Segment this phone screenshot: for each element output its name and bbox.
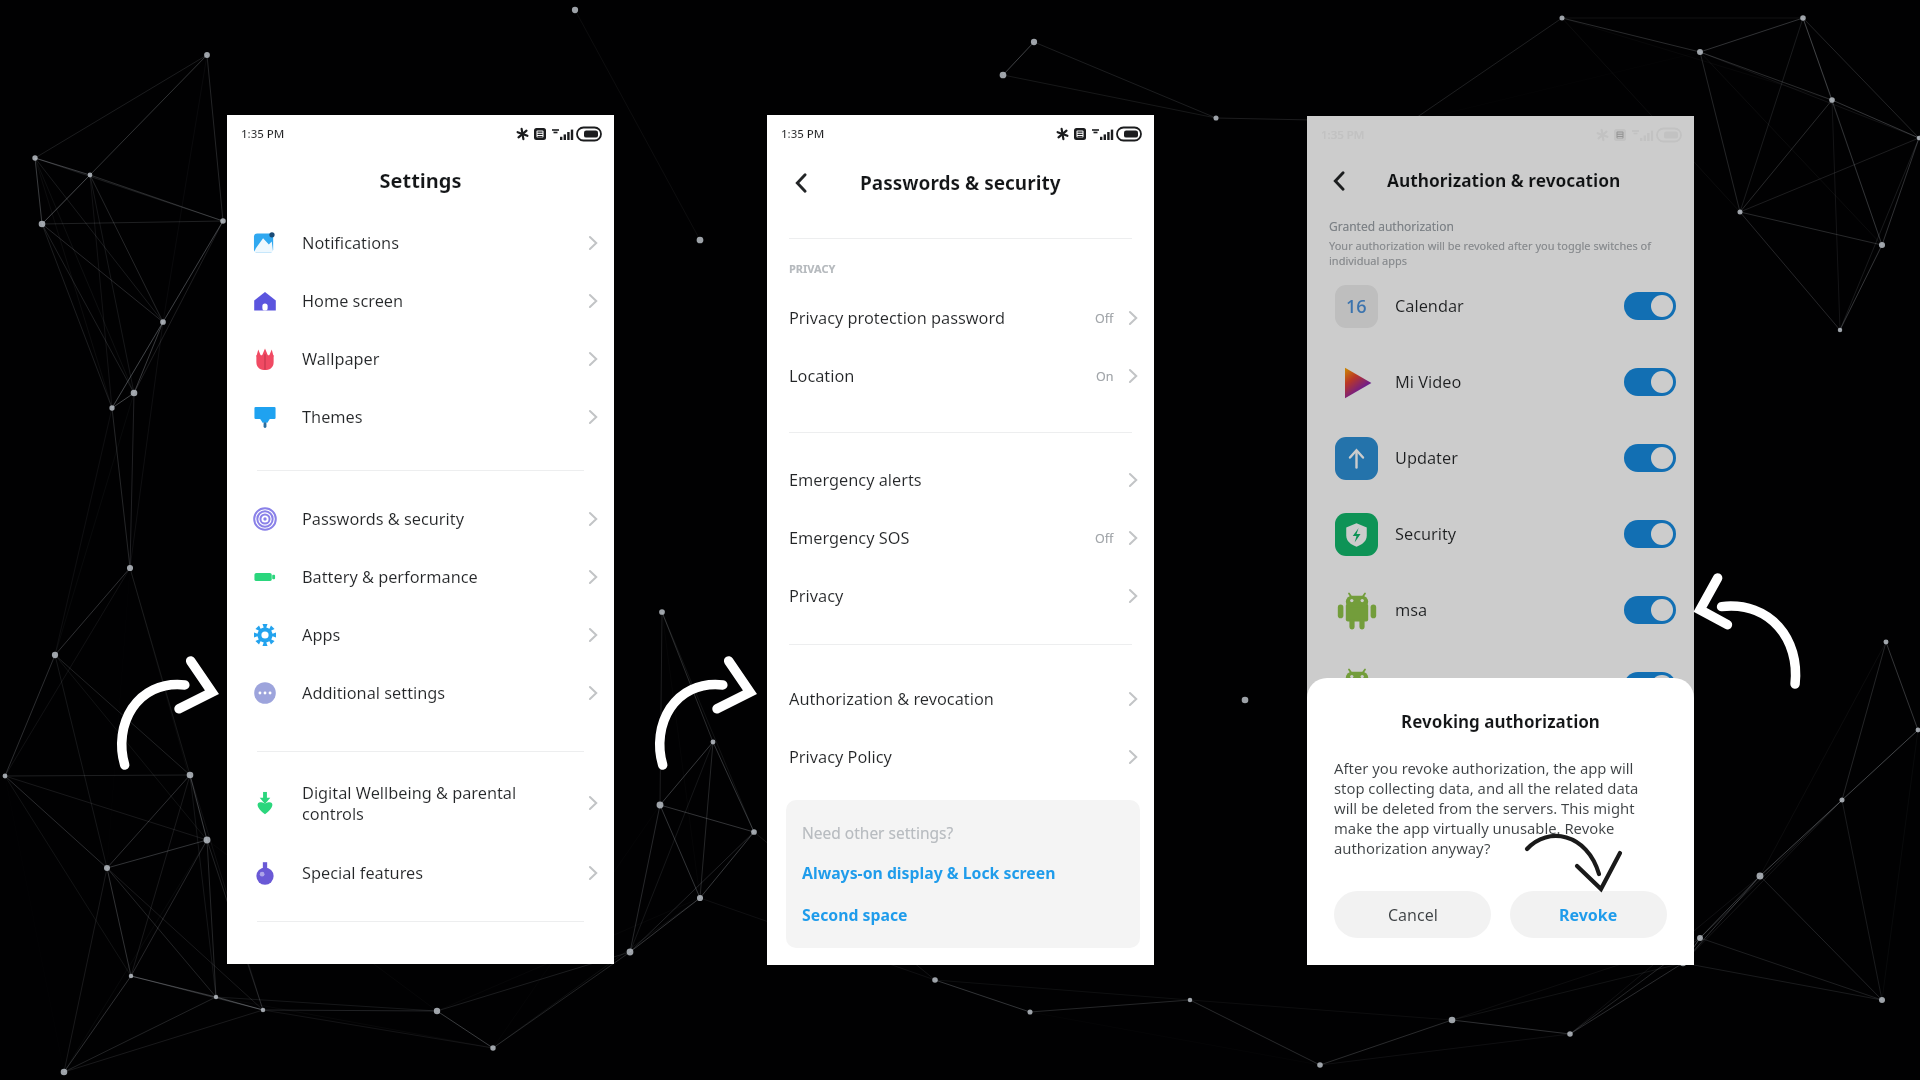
button[interactable]: Second space xyxy=(802,898,1140,932)
staticText: Digital Wellbeing & parental controls xyxy=(302,782,584,825)
staticText: Need other settings? xyxy=(802,822,954,843)
button[interactable]: 16 xyxy=(1307,268,1694,344)
staticText: Downloads xyxy=(1395,675,1624,697)
button[interactable]: Toggle authorization xyxy=(1624,292,1676,320)
staticText: Themes xyxy=(302,406,584,428)
button[interactable]: Privacy xyxy=(767,567,1154,625)
button[interactable]: Special features xyxy=(227,844,614,902)
staticText: Off xyxy=(1095,310,1114,327)
staticText: Passwords & security xyxy=(302,508,584,530)
staticText: msa xyxy=(1395,599,1624,621)
button[interactable]: Mi Video xyxy=(1307,344,1694,420)
button[interactable]: Back xyxy=(783,166,817,200)
staticText: Security xyxy=(1395,523,1624,545)
staticText: Off xyxy=(1095,530,1114,547)
button[interactable]: Privacy Policy xyxy=(767,728,1154,786)
button[interactable]: Toggle authorization xyxy=(1624,444,1676,472)
staticText: Your authorization will be revoked after… xyxy=(1329,238,1651,268)
button[interactable]: Always-on display & Lock screen xyxy=(802,856,1140,890)
button[interactable]: Location xyxy=(767,347,1154,405)
staticText: Privacy Policy xyxy=(789,746,1124,768)
staticText: On xyxy=(1096,368,1114,385)
staticText: Battery & performance xyxy=(302,566,584,588)
staticText: Mi Video xyxy=(1395,371,1624,393)
staticText: Second space xyxy=(802,904,908,926)
button[interactable]: Toggle authorization xyxy=(1624,596,1676,624)
staticText: Emergency SOS xyxy=(789,527,1095,549)
staticText: Wallpaper xyxy=(302,348,584,370)
button[interactable]: Passwords & security xyxy=(227,490,614,548)
button[interactable]: Wallpaper xyxy=(227,330,614,388)
button[interactable]: Revoke xyxy=(1510,891,1667,938)
button[interactable]: Apps xyxy=(227,606,614,664)
staticText: Cancel xyxy=(1388,904,1438,926)
button[interactable]: Battery & performance xyxy=(227,548,614,606)
button[interactable]: Toggle authorization xyxy=(1624,520,1676,548)
staticText: Home screen xyxy=(302,290,584,312)
button[interactable]: Cancel xyxy=(1334,891,1491,938)
staticText: Privacy protection password xyxy=(789,307,1095,329)
button[interactable]: Downloads xyxy=(1307,648,1694,724)
button[interactable]: Toggle authorization xyxy=(1624,672,1676,700)
staticText: Special features xyxy=(302,862,584,884)
staticText: PRIVACY xyxy=(789,261,836,276)
staticText: Revoke xyxy=(1559,904,1618,926)
staticText: Updater xyxy=(1395,447,1624,469)
staticText: Authorization & revocation xyxy=(789,688,1124,710)
staticText: 1:35 PM xyxy=(781,126,825,142)
button[interactable]: Emergency alerts xyxy=(767,451,1154,509)
staticText: Settings xyxy=(227,167,614,194)
staticText: Location xyxy=(789,365,1096,387)
button[interactable]: Additional settings xyxy=(227,664,614,722)
staticText: Always-on display & Lock screen xyxy=(802,862,1056,884)
staticText: 1:35 PM xyxy=(1321,127,1365,143)
staticText: After you revoke authorization, the app … xyxy=(1334,758,1667,858)
staticText: 1:35 PM xyxy=(241,126,285,142)
button[interactable]: Notifications xyxy=(227,214,614,272)
staticText: Notifications xyxy=(302,232,584,254)
button[interactable]: Digital Wellbeing & parental controls xyxy=(227,769,614,837)
staticText: Passwords & security xyxy=(860,170,1061,196)
button[interactable]: msa xyxy=(1307,572,1694,648)
staticText: Authorization & revocation xyxy=(1387,169,1621,193)
staticText: Privacy xyxy=(789,585,1124,607)
staticText: 16 xyxy=(1346,294,1367,319)
button[interactable]: Emergency SOS xyxy=(767,509,1154,567)
button[interactable]: Back xyxy=(1321,164,1355,198)
staticText: Revoking authorization xyxy=(1334,710,1667,733)
staticText: Apps xyxy=(302,624,584,646)
button[interactable]: Toggle authorization xyxy=(1624,368,1676,396)
staticText: Granted authorization xyxy=(1329,218,1454,234)
button[interactable]: Home screen xyxy=(227,272,614,330)
staticText: Calendar xyxy=(1395,295,1624,317)
button[interactable]: Privacy protection password xyxy=(767,289,1154,347)
staticText: Additional settings xyxy=(302,682,584,704)
staticText: Emergency alerts xyxy=(789,469,1124,491)
button[interactable]: Authorization & revocation xyxy=(767,670,1154,728)
button[interactable]: Themes xyxy=(227,388,614,446)
button[interactable]: Security xyxy=(1307,496,1694,572)
button[interactable]: Updater xyxy=(1307,420,1694,496)
